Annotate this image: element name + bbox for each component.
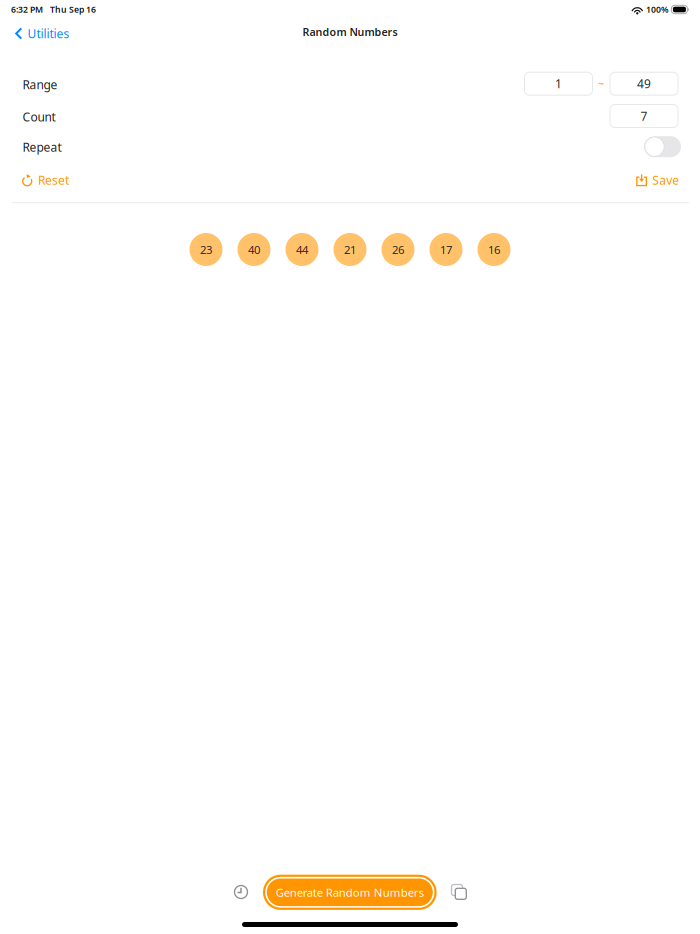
staticText: 1 [555, 75, 562, 92]
button[interactable]: 17 [429, 233, 462, 266]
staticText: 21 [344, 242, 356, 257]
staticText: Reset [38, 172, 69, 188]
button[interactable]: 40 [237, 233, 270, 266]
staticText: 7 [640, 108, 647, 124]
button[interactable]: Save [630, 168, 685, 192]
staticText: 100% [646, 4, 669, 15]
staticText: Utilities [27, 25, 69, 42]
button[interactable]: 44 [285, 233, 318, 266]
button[interactable]: 23 [189, 233, 222, 266]
staticText: ~ [598, 76, 604, 91]
button[interactable]: Utilities [7, 21, 77, 46]
staticText: Random Numbers [302, 25, 397, 39]
staticText: Thu Sep 16 [50, 4, 96, 15]
staticText: 17 [440, 242, 452, 257]
staticText: Generate Random Numbers [276, 885, 424, 900]
button[interactable]: Reset [16, 168, 75, 192]
button[interactable]: Copy [444, 877, 474, 907]
button[interactable]: Generate Random Numbers [263, 875, 437, 910]
button[interactable]: 16 [477, 233, 510, 266]
staticText: 16 [488, 242, 500, 257]
button[interactable]: 21 [333, 233, 366, 266]
staticText: 23 [200, 242, 212, 257]
staticText: Count [22, 109, 55, 125]
staticText: 6:32 PM [11, 4, 43, 15]
staticText: 26 [392, 242, 404, 257]
staticText: 44 [296, 242, 308, 257]
staticText: Range [22, 76, 57, 93]
staticText: 49 [637, 75, 651, 92]
staticText: Repeat [22, 139, 61, 155]
staticText: 40 [248, 242, 260, 257]
button[interactable]: 26 [381, 233, 414, 266]
button[interactable]: History [226, 877, 256, 907]
staticText: Save [652, 172, 679, 188]
